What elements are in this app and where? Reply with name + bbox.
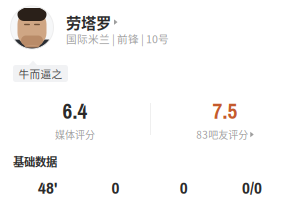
staticText: 6.4 xyxy=(62,97,87,125)
staticText: 国际米兰 | 前锋 | 10号 xyxy=(66,31,169,46)
staticText: 基础数据 xyxy=(13,153,57,169)
staticText: 媒体评分 xyxy=(55,127,95,142)
staticText: 83吧友评分 xyxy=(196,127,248,142)
staticText: 0 xyxy=(180,176,188,199)
staticText: 0 xyxy=(111,176,119,199)
staticText: 劳塔罗 xyxy=(66,11,111,33)
staticText: 0/0 xyxy=(242,176,262,199)
staticText: 牛而逼之 xyxy=(18,66,62,81)
staticText: 7.5 xyxy=(212,97,237,125)
button[interactable]: 7.5 xyxy=(150,103,300,140)
button[interactable]: 劳塔罗 xyxy=(10,6,288,49)
staticText: 48' xyxy=(38,176,57,199)
